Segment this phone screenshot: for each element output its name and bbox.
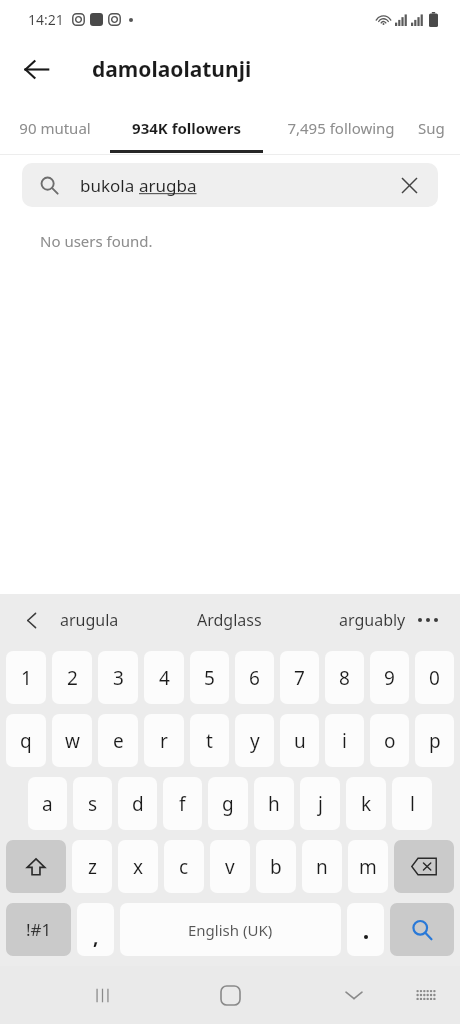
button[interactable]: r: [144, 714, 184, 767]
staticText: z: [88, 854, 97, 880]
button[interactable]: Backspace: [394, 840, 454, 893]
button[interactable]: [347, 903, 384, 956]
staticText: s: [88, 791, 98, 817]
button[interactable]: arugula: [60, 594, 119, 646]
button[interactable]: 1: [6, 651, 46, 704]
button[interactable]: Ardglass: [197, 594, 262, 646]
button[interactable]: Sug: [418, 100, 460, 155]
button[interactable]: 7: [280, 651, 319, 704]
button[interactable]: z: [72, 840, 112, 893]
staticText: j: [318, 791, 323, 817]
button[interactable]: f: [163, 777, 202, 830]
staticText: arugula: [60, 609, 119, 631]
button[interactable]: u: [280, 714, 319, 767]
staticText: t: [206, 728, 213, 754]
button[interactable]: !#1: [6, 903, 71, 956]
button[interactable]: Search: [390, 903, 454, 956]
staticText: v: [225, 854, 235, 880]
staticText: o: [384, 728, 396, 754]
button[interactable]: 2: [52, 651, 92, 704]
button[interactable]: Clear search: [392, 168, 426, 202]
staticText: 7,495 following: [287, 118, 395, 138]
button[interactable]: Back: [14, 47, 58, 91]
staticText: !#1: [26, 918, 52, 941]
button[interactable]: Hide keyboard: [330, 971, 378, 1019]
button[interactable]: 3: [98, 651, 138, 704]
staticText: m: [359, 854, 377, 880]
staticText: l: [410, 791, 415, 817]
button[interactable]: Recent apps: [78, 971, 126, 1019]
button[interactable]: y: [235, 714, 274, 767]
button[interactable]: x: [118, 840, 158, 893]
button[interactable]: More suggestions: [410, 602, 446, 638]
staticText: No users found.: [40, 231, 153, 251]
button[interactable]: s: [73, 777, 112, 830]
button[interactable]: e: [98, 714, 138, 767]
button[interactable]: 934K followers: [110, 100, 263, 155]
staticText: y: [250, 728, 260, 754]
button[interactable]: Previous suggestions: [14, 602, 50, 638]
button[interactable]: 90 mutual: [0, 100, 110, 155]
button[interactable]: w: [52, 714, 92, 767]
button[interactable]: g: [208, 777, 248, 830]
button[interactable]: ,: [77, 903, 114, 956]
staticText: arugba: [139, 174, 197, 197]
staticText: 2: [67, 665, 78, 691]
button[interactable]: o: [370, 714, 409, 767]
staticText: d: [132, 791, 144, 817]
staticText: 90 mutual: [19, 118, 91, 138]
staticText: p: [429, 728, 441, 754]
staticText: e: [113, 728, 124, 754]
button[interactable]: bukola: [22, 163, 438, 207]
button[interactable]: k: [346, 777, 386, 830]
button[interactable]: 6: [235, 651, 274, 704]
button[interactable]: n: [302, 840, 342, 893]
staticText: u: [294, 728, 306, 754]
button[interactable]: Home: [206, 971, 254, 1019]
button[interactable]: 7,495 following: [263, 100, 418, 155]
staticText: c: [179, 854, 189, 880]
staticText: 7: [294, 665, 305, 691]
button[interactable]: 4: [144, 651, 184, 704]
button[interactable]: q: [6, 714, 46, 767]
staticText: 0: [429, 665, 440, 691]
staticText: 9: [384, 665, 395, 691]
button[interactable]: j: [300, 777, 340, 830]
staticText: arguably: [339, 609, 406, 631]
staticText: damolaolatunji: [92, 55, 252, 84]
button[interactable]: c: [164, 840, 204, 893]
staticText: English (UK): [188, 920, 273, 940]
staticText: x: [133, 854, 144, 880]
button[interactable]: Shift: [6, 840, 66, 893]
staticText: f: [179, 791, 186, 817]
staticText: i: [342, 728, 347, 754]
staticText: bukola: [80, 174, 139, 197]
button[interactable]: arguably: [339, 594, 406, 646]
button[interactable]: 8: [325, 651, 364, 704]
staticText: r: [160, 728, 168, 754]
button[interactable]: b: [256, 840, 296, 893]
button[interactable]: m: [348, 840, 388, 893]
button[interactable]: v: [210, 840, 250, 893]
staticText: 4: [159, 665, 170, 691]
button[interactable]: Change keyboard: [406, 975, 446, 1015]
staticText: g: [222, 791, 234, 817]
button[interactable]: English (UK): [120, 903, 341, 956]
button[interactable]: d: [118, 777, 157, 830]
button[interactable]: 0: [415, 651, 454, 704]
button[interactable]: h: [254, 777, 294, 830]
button[interactable]: a: [28, 777, 67, 830]
button[interactable]: t: [190, 714, 229, 767]
button[interactable]: 5: [190, 651, 229, 704]
staticText: b: [270, 854, 282, 880]
button[interactable]: i: [325, 714, 364, 767]
staticText: a: [42, 791, 53, 817]
staticText: 8: [339, 665, 350, 691]
staticText: 934K followers: [132, 118, 241, 138]
button[interactable]: p: [415, 714, 454, 767]
staticText: k: [361, 791, 372, 817]
staticText: w: [65, 728, 80, 754]
button[interactable]: l: [392, 777, 432, 830]
button[interactable]: 9: [370, 651, 409, 704]
staticText: 3: [113, 665, 124, 691]
